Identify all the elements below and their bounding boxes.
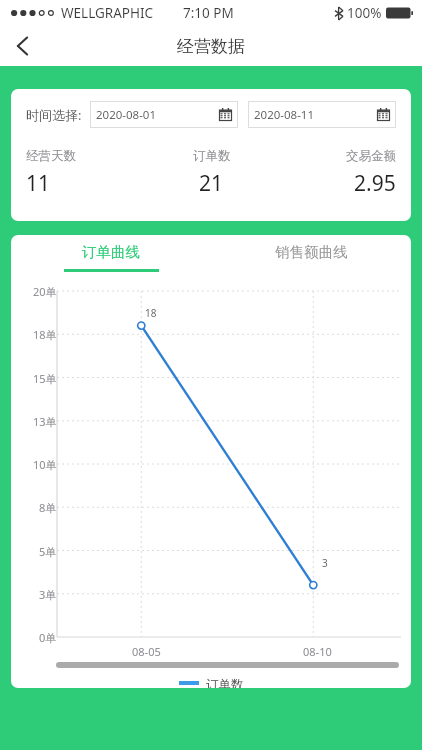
staticText: 订单数 [193, 148, 231, 164]
staticText: 08-05 [132, 644, 161, 659]
staticText: 时间选择: [26, 106, 82, 124]
staticText: 10单 [33, 457, 57, 471]
staticText: 订单数 [206, 677, 244, 688]
staticText: 3 [322, 556, 328, 570]
staticText: 销售额曲线 [275, 243, 348, 261]
staticText: 18单 [33, 327, 57, 341]
staticText: 2020-08-11 [254, 107, 377, 123]
staticText: 3单 [39, 587, 57, 601]
staticText: 7:10 PM [183, 4, 234, 22]
staticText: 11 [26, 169, 51, 198]
staticText: 2020-08-01 [96, 107, 219, 123]
button[interactable]: 销售额曲线 [211, 243, 411, 272]
staticText: 18 [145, 306, 157, 320]
button[interactable]: 2020-08-11 [248, 101, 396, 128]
staticText: 21 [199, 169, 224, 198]
staticText: 8单 [39, 500, 57, 514]
staticText: 20单 [33, 284, 57, 298]
staticText: 经营天数 [26, 148, 76, 164]
staticText: WELLGRAPHIC [61, 4, 154, 22]
staticText: 经营数据 [177, 36, 245, 57]
staticText: 交易金额 [346, 148, 396, 164]
button[interactable]: 2020-08-01 [90, 101, 238, 128]
staticText: 100% [347, 4, 382, 22]
staticText: 5单 [39, 544, 57, 558]
staticText: 15单 [33, 371, 57, 385]
staticText: 2.95 [354, 169, 396, 198]
staticText: 0单 [39, 630, 57, 644]
button[interactable]: Back [0, 26, 44, 66]
staticText: 08-10 [303, 644, 332, 659]
button[interactable]: 订单曲线 [11, 243, 211, 272]
staticText: 订单曲线 [82, 243, 140, 261]
staticText: 13单 [33, 414, 57, 428]
